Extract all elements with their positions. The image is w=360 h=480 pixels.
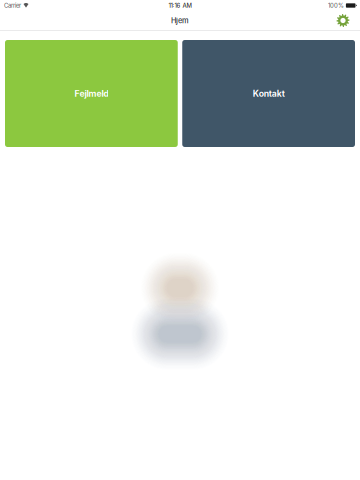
button[interactable]: Kontakt (182, 40, 355, 147)
staticText: Fejlmeld (74, 88, 108, 99)
button[interactable]: Fejlmeld (5, 40, 178, 147)
staticText: Carrier (4, 2, 21, 9)
staticText: 11:16 AM (168, 2, 191, 9)
button[interactable]: Settings (330, 11, 356, 30)
staticText: Hjem (171, 16, 189, 25)
staticText: 100% (328, 2, 344, 9)
staticText: Kontakt (253, 88, 285, 99)
